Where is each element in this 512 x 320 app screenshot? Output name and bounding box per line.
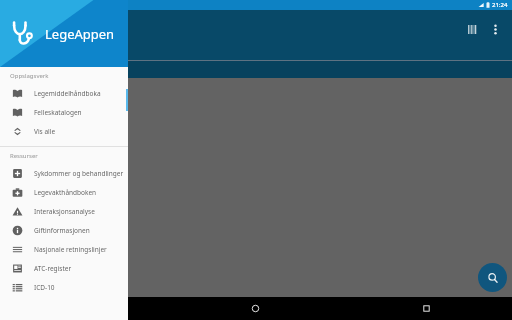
button[interactable]: Giftinformasjonen	[0, 221, 128, 240]
staticText: Vis alle	[34, 127, 56, 136]
staticText: Giftinformasjonen	[34, 226, 90, 235]
staticText: Sykdommer og behandlinger	[34, 169, 124, 178]
button[interactable]: Vis alle	[0, 122, 128, 141]
button[interactable]: Legemiddelhåndboka	[0, 84, 128, 103]
button[interactable]: ICD-10	[0, 278, 128, 297]
button[interactable]: Felleskatalogen	[0, 103, 128, 122]
staticText: Legevakthåndboken	[34, 188, 97, 197]
staticText: LegeAppen	[45, 25, 115, 43]
button[interactable]: Back	[0, 297, 170, 320]
button[interactable]: Interaksjonsanalyse	[0, 202, 128, 221]
staticText: ICD-10	[34, 283, 55, 292]
staticText: Interaksjonsanalyse	[34, 207, 95, 216]
button[interactable]: Search	[478, 263, 507, 292]
staticText: Ressurser	[10, 152, 38, 160]
button[interactable]: Recent apps	[341, 297, 512, 320]
button[interactable]: ATC-register	[0, 259, 128, 278]
staticText: ATC-register	[34, 264, 72, 273]
staticText: Legemiddelhåndboka	[34, 89, 101, 98]
staticText: Nasjonale retningslinjer	[34, 245, 107, 254]
button[interactable]: Legevakthåndboken	[0, 183, 128, 202]
button[interactable]: Scan barcode	[462, 18, 484, 40]
button[interactable]: More options	[484, 18, 506, 40]
button[interactable]: Home	[170, 297, 341, 320]
button[interactable]: Sykdommer og behandlinger	[0, 164, 128, 183]
staticText: Oppslagsverk	[10, 72, 49, 80]
staticText: 21:24	[492, 1, 508, 9]
button[interactable]: Nasjonale retningslinjer	[0, 240, 128, 259]
staticText: Felleskatalogen	[34, 108, 82, 117]
